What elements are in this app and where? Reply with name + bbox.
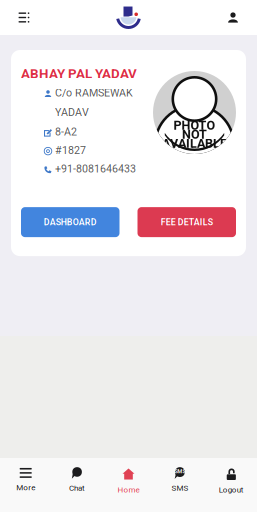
button[interactable]: Home [103,458,154,512]
staticText: 8-A2 [55,126,77,138]
staticText: DASHBOARD [44,217,97,227]
staticText: ABHAY PAL YADAV [21,66,137,82]
button[interactable]: Logout [206,458,257,512]
staticText: YADAV [55,106,89,119]
staticText: Home [117,485,139,494]
staticText: Logout [219,485,244,494]
staticText: SMS [174,468,185,475]
button[interactable]: Profile [216,0,250,35]
button[interactable]: FEE DETAILS [137,207,236,237]
button[interactable]: More [0,458,51,512]
staticText: More [16,483,35,492]
staticText: #1827 [55,144,86,157]
staticText: NOT [182,127,207,142]
button[interactable]: DASHBOARD [21,207,119,237]
button[interactable]: SMS [154,458,206,512]
button[interactable]: Chat [51,458,103,512]
staticText: AVAILABLE [162,136,227,151]
staticText: PHOTO [173,118,215,133]
staticText: FEE DETAILS [161,217,213,227]
staticText: C/o RAMSEWAK [55,87,133,99]
staticText: +91-8081646433 [55,163,136,175]
staticText: Chat [69,483,85,493]
button[interactable]: Menu [7,0,41,35]
staticText: SMS [171,483,188,493]
